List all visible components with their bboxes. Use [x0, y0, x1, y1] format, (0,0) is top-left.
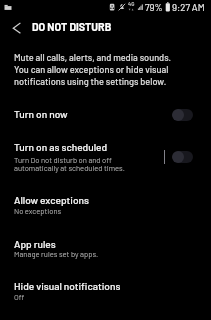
button[interactable]: App rules	[0, 227, 211, 270]
button[interactable]: Allow exceptions	[0, 184, 211, 227]
staticText: 9:27 AM	[172, 1, 205, 13]
button[interactable]: Toggle switch	[172, 151, 193, 163]
staticText: Allow exceptions	[14, 194, 89, 206]
staticText: Mute all calls, alerts, and media sounds…	[14, 52, 172, 87]
staticText: Turn on now	[14, 108, 68, 120]
staticText: Off	[14, 292, 25, 301]
staticText: Hide visual notifications	[14, 280, 121, 292]
button[interactable]: Turn on now	[0, 96, 211, 134]
button[interactable]: Hide visual notifications	[0, 270, 211, 313]
staticText: No exceptions	[14, 206, 62, 215]
button[interactable]: Back	[4, 17, 28, 41]
button[interactable]: Toggle switch	[172, 109, 193, 121]
button[interactable]: Turn on as scheduled	[0, 134, 211, 184]
staticText: Turn Do not disturb on and off automatic…	[14, 155, 125, 173]
staticText: DO NOT DISTURB	[32, 20, 112, 33]
staticText: Turn on as scheduled	[14, 141, 108, 153]
staticText: 4G	[128, 1, 135, 7]
staticText: App rules	[14, 238, 56, 250]
staticText: Manage rules set by apps.	[14, 249, 99, 258]
staticText: 79%	[145, 1, 163, 13]
